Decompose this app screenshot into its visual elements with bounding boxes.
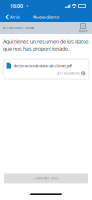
staticText: Aquí tienes un resumen de los datos que …: [3, 38, 89, 52]
button[interactable]: Ayuda: [77, 23, 89, 33]
staticText: SU CONTRATO Y FIRMA: [3, 26, 34, 30]
staticText: declaracion-de-datos-de-cliente.pdf: [13, 63, 71, 68]
button[interactable]: Atrás: [0, 12, 23, 22]
staticText: 16:00: [10, 2, 23, 10]
staticText: Ayuda: [79, 29, 87, 33]
staticText: Leer documento: [57, 72, 80, 75]
button[interactable]: CONFIRMAR DATOS: [4, 173, 88, 183]
staticText: Nuevo cliente: [33, 14, 59, 20]
staticText: Atrás: [10, 14, 20, 20]
staticText: CONFIRMAR DATOS: [33, 177, 58, 180]
button[interactable]: Leer documento: [57, 71, 86, 76]
